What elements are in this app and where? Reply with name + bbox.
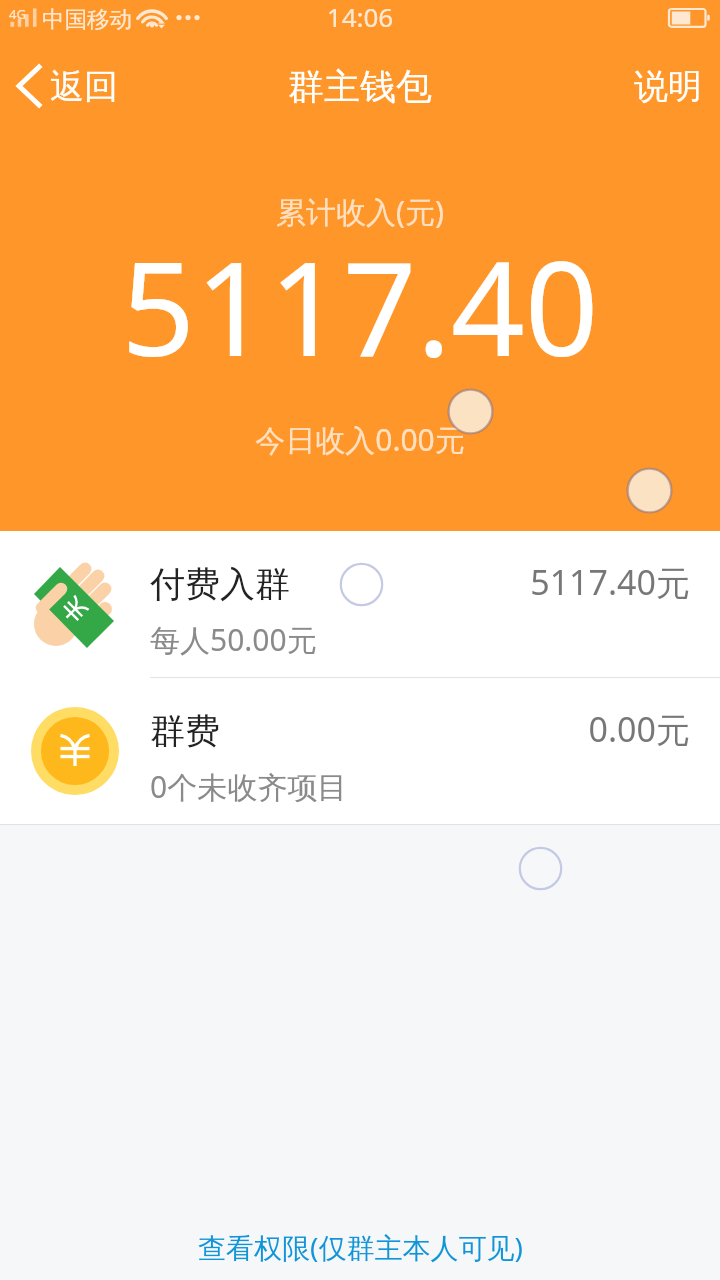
button[interactable]: 返回 <box>0 56 130 116</box>
staticText: 14:06 <box>0 0 720 34</box>
staticText: 群费 <box>150 709 220 753</box>
staticText: 付费入群 <box>150 562 290 606</box>
staticText: 0个未收齐项目 <box>150 766 348 807</box>
staticText: 累计收入(元) <box>0 191 720 232</box>
staticText: 每人50.00元 <box>150 619 317 660</box>
staticText: 5117.40元 <box>0 559 690 605</box>
button[interactable]: 说明 <box>616 57 720 116</box>
staticText: 中国移动 <box>42 5 132 33</box>
staticText: 0.00元 <box>0 706 690 752</box>
staticText: 说明 <box>634 65 702 108</box>
staticText: 今日收入0.00元 <box>0 419 720 460</box>
button[interactable]: 查看权限(仅群主本人可见) <box>182 1222 539 1272</box>
staticText: 4G <box>9 5 26 23</box>
button[interactable]: 群费 <box>0 678 720 824</box>
staticText: 群主钱包 <box>288 64 432 109</box>
staticText: 查看权限(仅群主本人可见) <box>198 1228 523 1266</box>
staticText: 5117.40 <box>0 218 720 394</box>
staticText: 返回 <box>50 65 118 108</box>
button[interactable]: 付费入群 <box>0 531 720 677</box>
